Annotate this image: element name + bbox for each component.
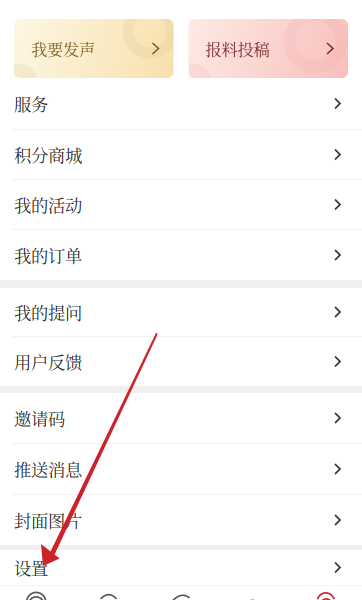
button[interactable]: 积分商城 <box>0 130 362 179</box>
staticText: 我的订单 <box>14 242 82 267</box>
staticText: 积分商城 <box>14 142 82 167</box>
staticText: 封面图片 <box>14 507 82 532</box>
button[interactable]: Home <box>0 586 72 600</box>
button[interactable]: Live <box>145 586 217 600</box>
button[interactable]: Service <box>217 586 290 600</box>
button[interactable]: Me <box>290 586 362 600</box>
button[interactable]: 服务 <box>0 78 362 129</box>
button[interactable]: 我的活动 <box>0 180 362 229</box>
button[interactable]: 报料投稿 <box>188 19 348 78</box>
button[interactable]: 我的订单 <box>0 230 362 280</box>
button[interactable]: 封面图片 <box>0 495 362 545</box>
button[interactable]: 推送消息 <box>0 444 362 494</box>
button[interactable]: 我要发声 <box>14 19 173 78</box>
button[interactable]: 设置 <box>0 550 362 585</box>
staticText: 邀请码 <box>14 405 65 430</box>
staticText: 我要发声 <box>31 37 95 60</box>
button[interactable]: 用户反馈 <box>0 337 362 386</box>
staticText: 报料投稿 <box>205 37 269 60</box>
staticText: 用户反馈 <box>14 349 82 374</box>
staticText: 我的提问 <box>14 299 82 324</box>
staticText: 推送消息 <box>14 456 82 481</box>
staticText: 服务 <box>14 91 48 116</box>
staticText: 设置 <box>14 555 48 580</box>
button[interactable]: 我的提问 <box>0 288 362 336</box>
button[interactable]: Video <box>72 586 145 600</box>
button[interactable]: 邀请码 <box>0 393 362 443</box>
staticText: 我的活动 <box>14 192 82 217</box>
